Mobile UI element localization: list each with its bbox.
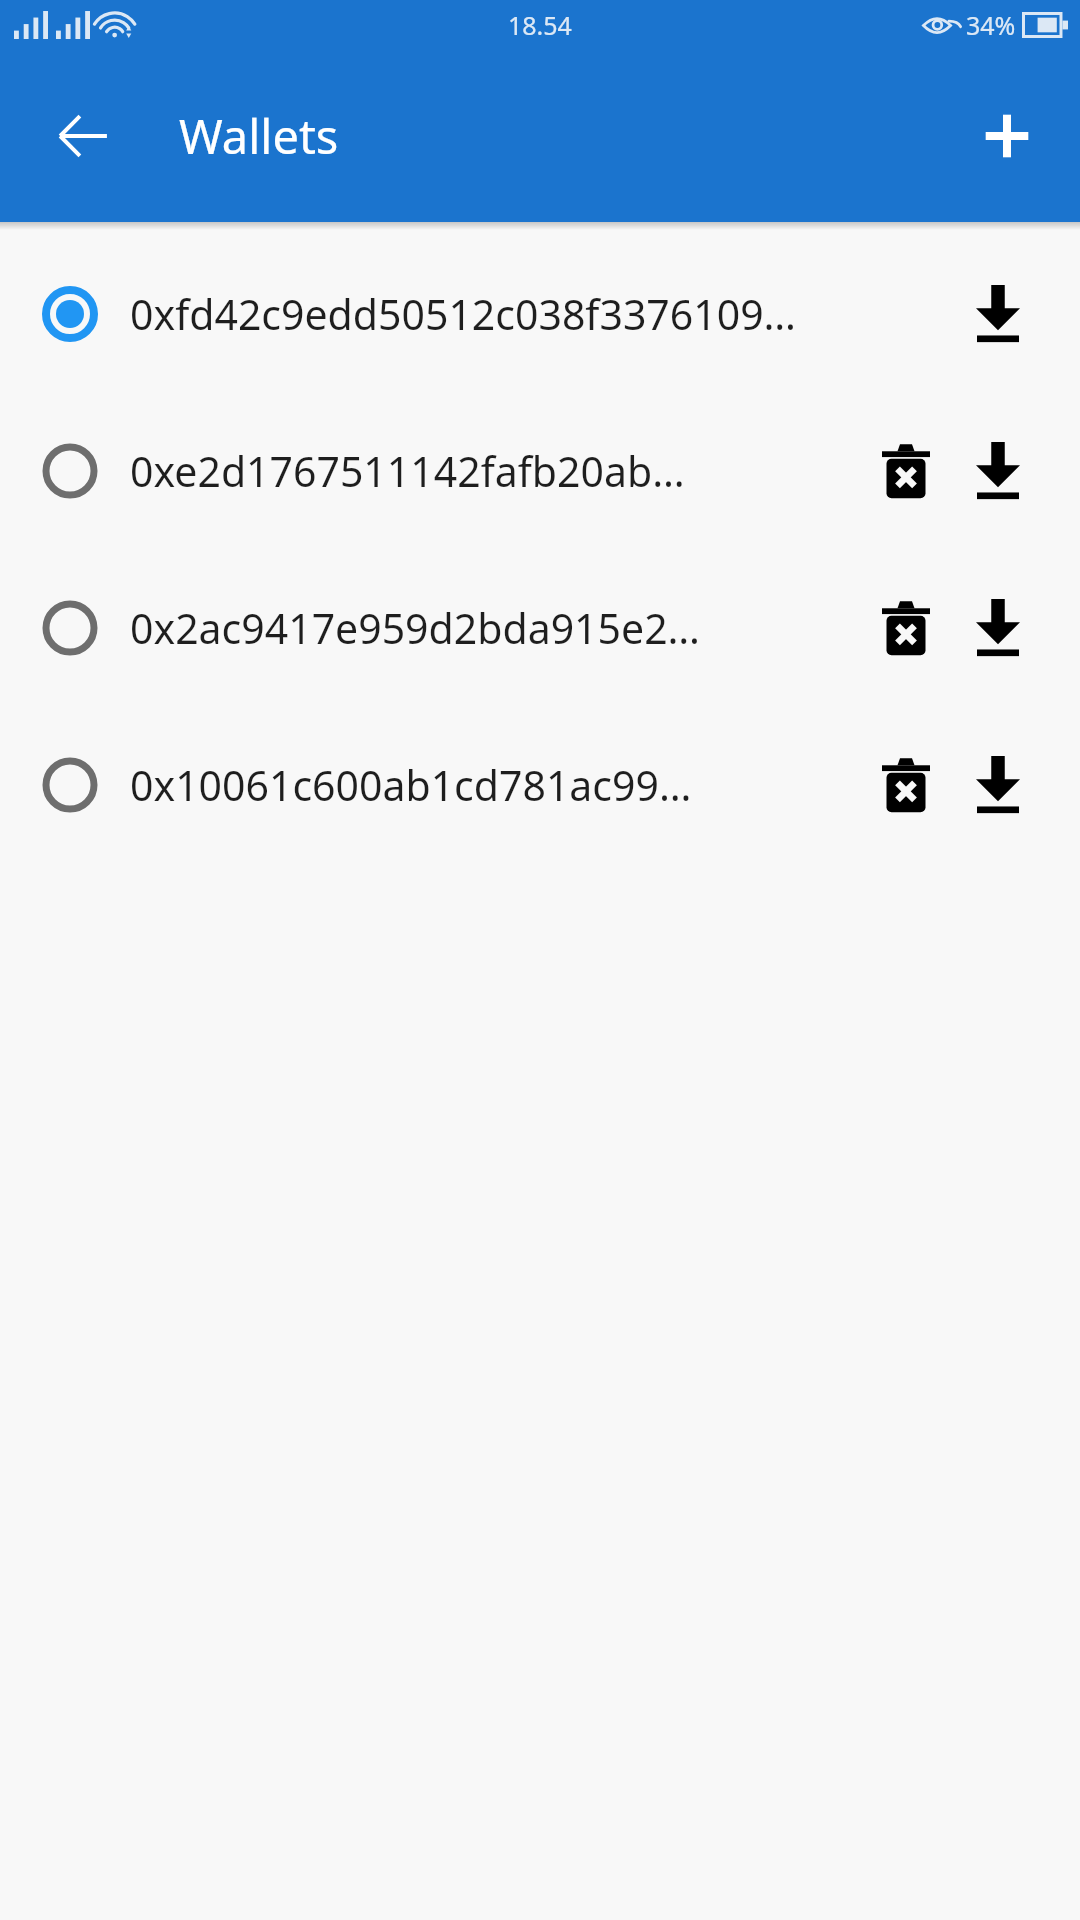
button[interactable]: Back [34,87,132,185]
button[interactable]: Select wallet [0,549,1080,706]
staticText: 0xfd42c9edd50512c038f3376109… [130,286,860,342]
button[interactable]: Select wallet [26,584,114,672]
button[interactable]: Download wallet [952,739,1044,831]
button[interactable]: Select wallet [26,741,114,829]
button[interactable]: Select wallet [0,706,1080,863]
staticText: 0x2ac9417e959d2bda915e2… [130,600,860,656]
button[interactable]: Delete wallet [860,582,952,674]
button[interactable]: Selected wallet [0,235,1080,392]
button[interactable]: Download wallet [952,582,1044,674]
button[interactable]: Download wallet [952,268,1044,360]
staticText: 18.54 [508,8,572,42]
button[interactable]: Delete wallet [860,425,952,517]
button[interactable]: Download wallet [952,425,1044,517]
staticText: 34% [966,8,1016,42]
button[interactable]: Select wallet [26,427,114,515]
button[interactable]: Selected wallet [26,270,114,358]
button[interactable]: Select wallet [0,392,1080,549]
staticText: Wallets [179,104,339,168]
staticText: 0xe2d1767511142fafb20ab… [130,443,860,499]
staticText: 0x10061c600ab1cd781ac99… [130,757,860,813]
button[interactable]: Delete wallet [860,739,952,831]
button[interactable]: Add wallet [958,87,1056,185]
